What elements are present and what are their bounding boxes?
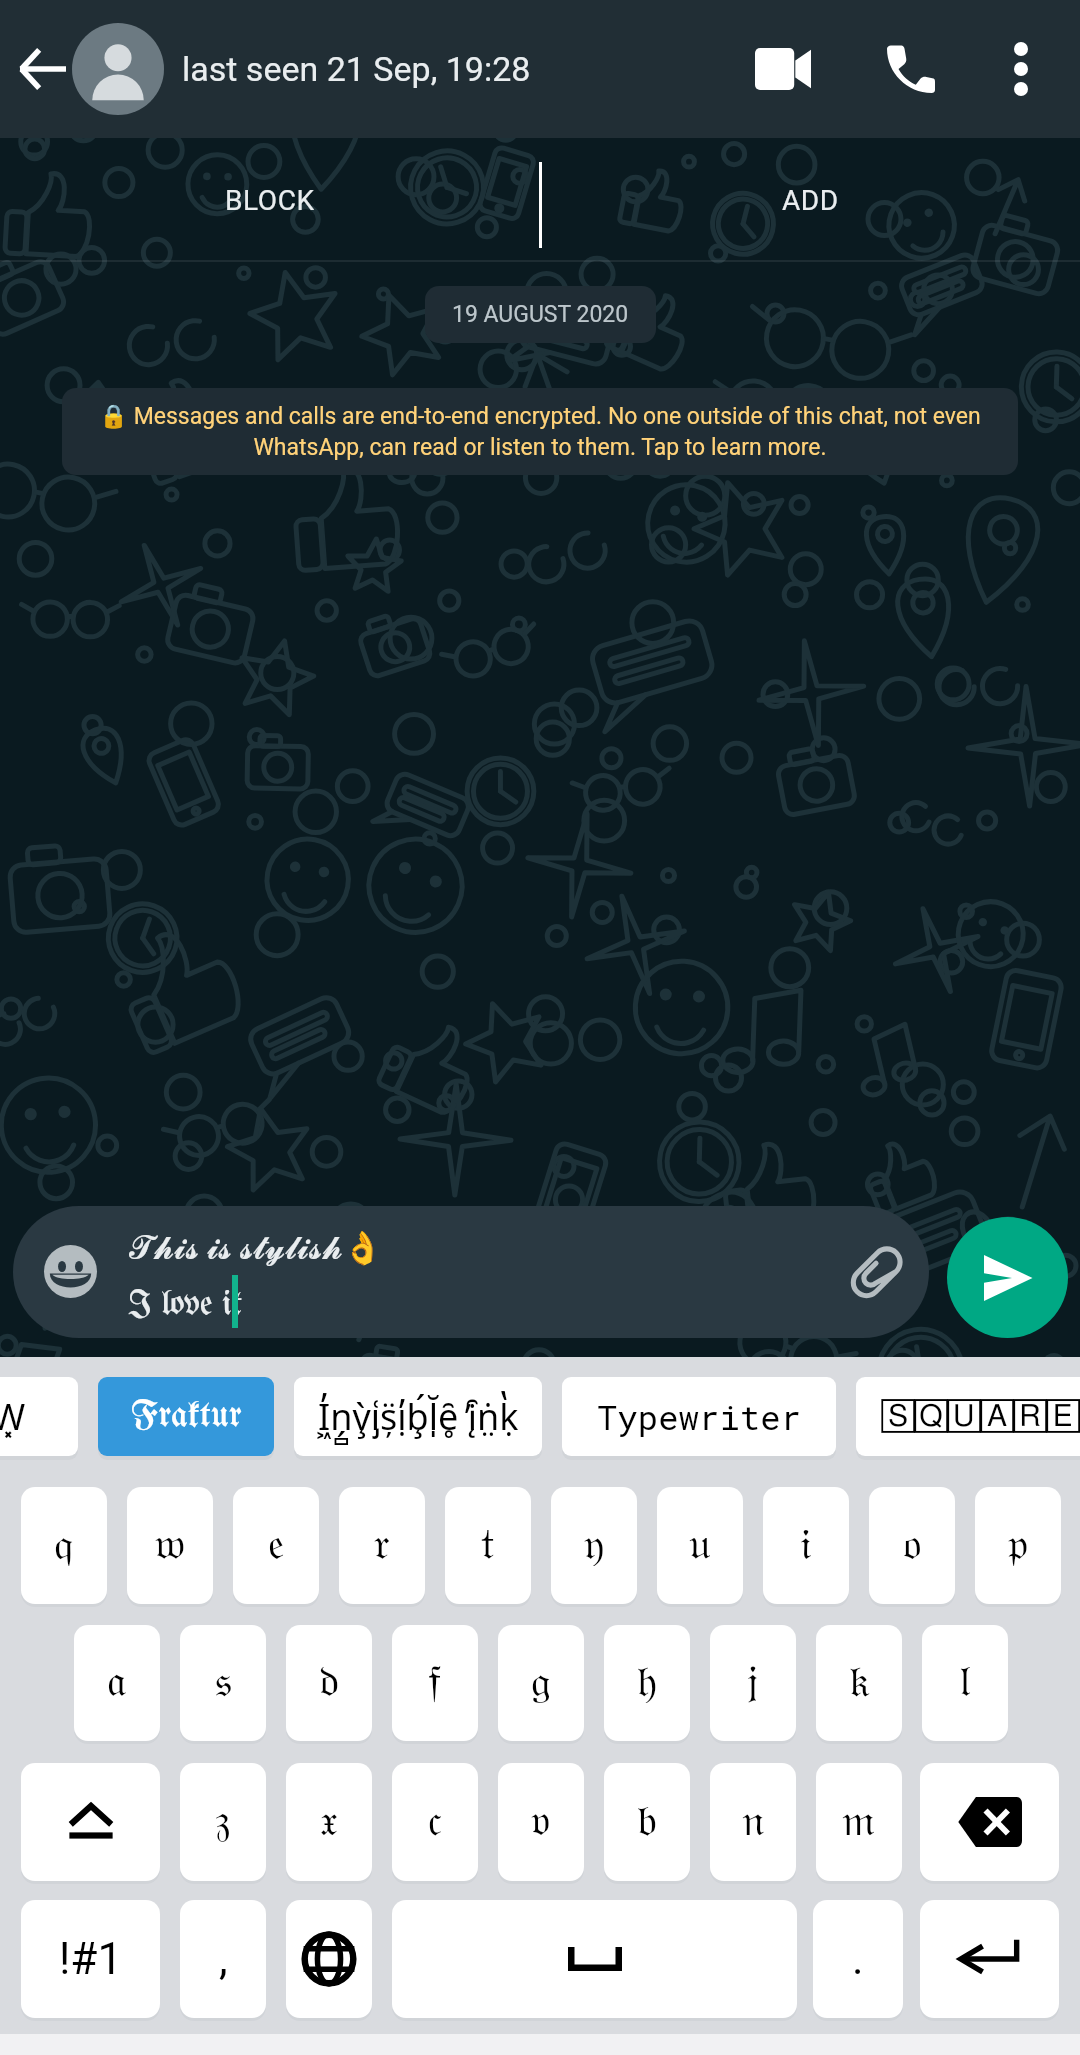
button[interactable]: 𝔵 bbox=[286, 1763, 372, 1881]
button[interactable]: 𝔥 bbox=[604, 1625, 690, 1741]
button[interactable]: Backspace bbox=[920, 1763, 1059, 1881]
button[interactable]: 𝔬 bbox=[869, 1487, 955, 1604]
staticText: 𝔠 bbox=[428, 1800, 442, 1844]
staticText: 𝔩 bbox=[959, 1661, 971, 1705]
staticText: 𝔪 bbox=[842, 1800, 876, 1844]
staticText: 𝓣𝓱𝓲𝓼 𝓲𝓼 𝓼𝓽𝔂𝓵𝓲𝓼𝓱👌 bbox=[129, 1225, 383, 1269]
staticText: 𝔥 bbox=[637, 1661, 658, 1705]
button[interactable]: . bbox=[813, 1900, 903, 2018]
button[interactable]: 𝔦 bbox=[763, 1487, 849, 1604]
button[interactable]: 𝔠 bbox=[392, 1763, 478, 1881]
button[interactable]: 𝔯 bbox=[339, 1487, 425, 1604]
button[interactable]: Typewriter bbox=[562, 1377, 836, 1456]
staticText: 𝔱 bbox=[481, 1524, 495, 1568]
staticText: 19 AUGUST 2020 bbox=[452, 301, 629, 328]
button[interactable]: BLOCK bbox=[0, 138, 540, 262]
button[interactable]: 𝔮 bbox=[21, 1487, 107, 1604]
staticText: . bbox=[852, 1933, 864, 1985]
button[interactable]: last seen 21 Sep, 19:28 bbox=[72, 0, 712, 138]
button[interactable]: Change keyboard bbox=[286, 1900, 372, 2018]
button[interactable]: 19 AUGUST 2020 bbox=[425, 286, 656, 343]
button[interactable]: !#1 bbox=[21, 1900, 160, 2018]
staticText: 𝔦 bbox=[800, 1524, 812, 1568]
button[interactable]: Voice call bbox=[865, 0, 957, 138]
staticText: last seen 21 Sep, 19:28 bbox=[182, 49, 531, 89]
button[interactable]: 𝔡 bbox=[286, 1625, 372, 1741]
staticText: 𝔬 bbox=[903, 1524, 922, 1568]
button[interactable]: 𝔢 bbox=[233, 1487, 319, 1604]
button[interactable]: Enter bbox=[920, 1900, 1059, 2018]
button[interactable]: 𝔷 bbox=[180, 1763, 266, 1881]
button[interactable]: 𝔣 bbox=[392, 1625, 478, 1741]
staticText: I love it bbox=[128, 1287, 243, 1322]
button[interactable]: 𝔲 bbox=[657, 1487, 743, 1604]
button[interactable]: 𝔭 bbox=[975, 1487, 1061, 1604]
button[interactable]: 𝔟 bbox=[604, 1763, 690, 1881]
button[interactable]: More options bbox=[975, 0, 1067, 138]
button[interactable]: 𝓣𝓱𝓲𝓼 𝓲𝓼 𝓼𝓽𝔂𝓵𝓲𝓼𝓱👌 bbox=[13, 1206, 929, 1338]
staticText: 𝔟 bbox=[637, 1800, 658, 1844]
button[interactable]: 𝔤 bbox=[498, 1625, 584, 1741]
button[interactable]: 𝔱 bbox=[445, 1487, 531, 1604]
staticText: 𝔮 bbox=[54, 1524, 74, 1568]
staticText: 𝔢 bbox=[268, 1524, 285, 1568]
button[interactable]: 🅂🅀🅄🄰🅁🄴 bbox=[856, 1377, 1080, 1456]
button[interactable]: 🔒 Messages and calls are end-to-end encr… bbox=[62, 388, 1018, 475]
staticText: 𝔨 bbox=[849, 1661, 870, 1705]
staticText: 𝔯 bbox=[374, 1524, 390, 1568]
button[interactable]: 𝔴 bbox=[127, 1487, 213, 1604]
staticText: 𝔣 bbox=[428, 1661, 442, 1705]
staticText: !#1 bbox=[59, 1933, 123, 1985]
staticText: ADD bbox=[782, 184, 839, 217]
button[interactable]: 𝔨 bbox=[816, 1625, 902, 1741]
staticText: Typewriter bbox=[597, 1394, 802, 1439]
staticText: 🅂🅀🅄🄰🅁🄴 bbox=[882, 1402, 1080, 1432]
button[interactable]: 𝔩 bbox=[922, 1625, 1008, 1741]
button[interactable]: 𝔰 bbox=[180, 1625, 266, 1741]
staticText: 𝔰 bbox=[215, 1661, 232, 1705]
button[interactable]: 𝔫 bbox=[710, 1763, 796, 1881]
staticText: 𝔧 bbox=[747, 1661, 759, 1705]
staticText: Fraktur bbox=[131, 1398, 242, 1435]
button[interactable]: Shift bbox=[21, 1763, 160, 1881]
button[interactable]: ADD bbox=[540, 138, 1080, 262]
staticText: 𝔡 bbox=[319, 1661, 340, 1705]
button[interactable]: O͓W͓ bbox=[0, 1377, 78, 1456]
staticText: 🔒 Messages and calls are end-to-end encr… bbox=[88, 403, 992, 460]
staticText: O͓W͓ bbox=[0, 1392, 26, 1441]
staticText: 𝔲 bbox=[689, 1524, 711, 1568]
staticText: 𝔭 bbox=[1008, 1524, 1028, 1568]
button[interactable]: I͖̓n̗̻v̧̀i̡͑ș̈ị̓b̧́l̩̆ȇ̥ ̕į͒ṅ̤ḳ̔ bbox=[294, 1377, 542, 1456]
button[interactable]: , bbox=[180, 1900, 266, 2018]
staticText: 𝔵 bbox=[320, 1800, 338, 1844]
button[interactable]: Back bbox=[0, 0, 86, 138]
staticText: I͖̓n̗̻v̧̀i̡͑ș̈ị̓b̧́l̩̆ȇ̥ ̕į͒ṅ̤ḳ̔ bbox=[318, 1392, 519, 1441]
button[interactable]: 𝔪 bbox=[816, 1763, 902, 1881]
staticText: , bbox=[219, 1933, 228, 1985]
button[interactable]: Send bbox=[947, 1217, 1068, 1338]
staticText: 𝔤 bbox=[531, 1661, 551, 1705]
button[interactable]: Space bbox=[392, 1900, 797, 2018]
staticText: 𝔶 bbox=[584, 1524, 605, 1568]
button[interactable]: 𝔶 bbox=[551, 1487, 637, 1604]
staticText: 𝔷 bbox=[215, 1800, 231, 1844]
button[interactable]: 𝔳 bbox=[498, 1763, 584, 1881]
button[interactable]: 𝔧 bbox=[710, 1625, 796, 1741]
staticText: 𝔫 bbox=[742, 1800, 765, 1844]
staticText: 𝔴 bbox=[155, 1524, 186, 1568]
button[interactable]: Video call bbox=[737, 0, 829, 138]
staticText: 𝔳 bbox=[531, 1800, 551, 1844]
staticText: BLOCK bbox=[225, 184, 315, 217]
staticText: 𝔞 bbox=[107, 1661, 127, 1705]
button[interactable]: Fraktur bbox=[98, 1377, 274, 1456]
button[interactable]: 𝔞 bbox=[74, 1625, 160, 1741]
